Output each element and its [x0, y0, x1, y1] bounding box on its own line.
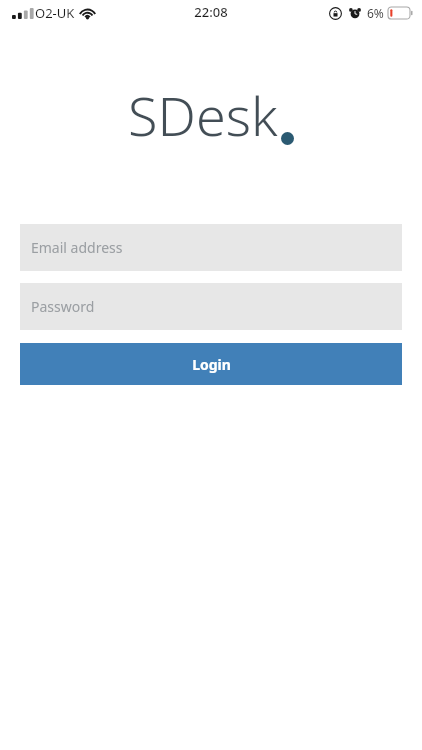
staticText: Login [192, 355, 231, 374]
staticText: Email address [31, 238, 123, 257]
staticText: 6% [367, 5, 384, 21]
staticText: Password [31, 297, 95, 316]
staticText: O2-UK [35, 4, 75, 22]
button[interactable]: Login [20, 343, 402, 385]
button[interactable]: Password [20, 283, 402, 330]
staticText: SDesk [128, 78, 278, 152]
staticText: 22:08 [194, 3, 228, 21]
button[interactable]: Email address [20, 224, 402, 271]
